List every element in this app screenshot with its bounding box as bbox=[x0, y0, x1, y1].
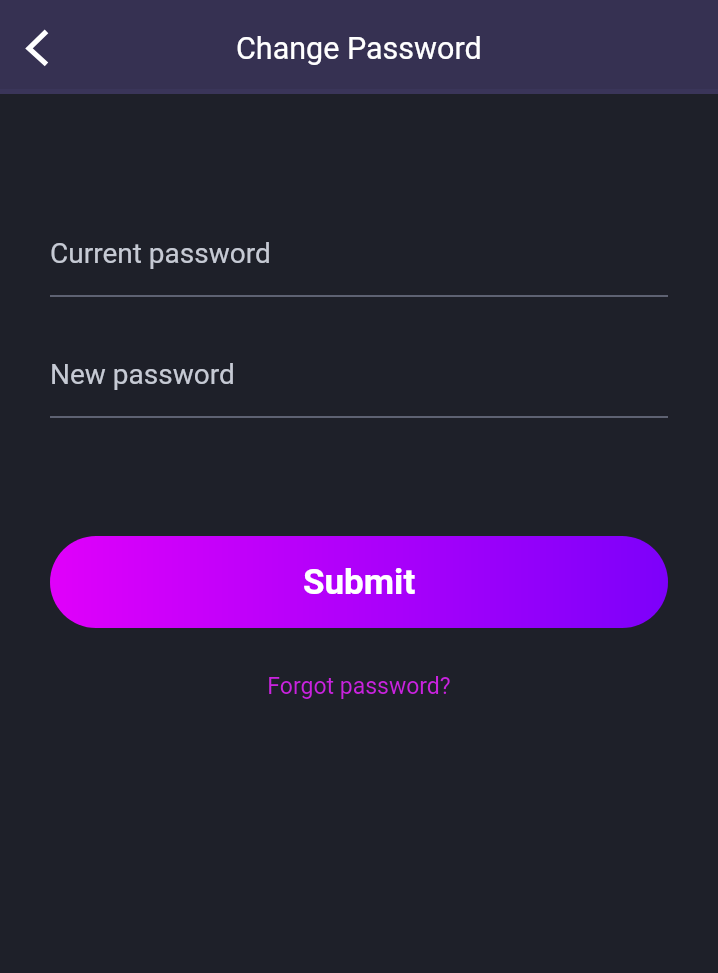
staticText: Submit bbox=[303, 562, 416, 603]
staticText: Current password bbox=[50, 237, 271, 270]
button[interactable]: Submit bbox=[50, 536, 668, 628]
staticText: Change Password bbox=[236, 31, 482, 67]
staticText: Forgot password? bbox=[267, 673, 451, 700]
staticText: New password bbox=[50, 358, 235, 391]
button[interactable]: Forgot password? bbox=[253, 665, 465, 708]
button[interactable]: Current password bbox=[50, 230, 668, 297]
button[interactable]: Back bbox=[6, 18, 66, 78]
button[interactable]: New password bbox=[50, 351, 668, 418]
